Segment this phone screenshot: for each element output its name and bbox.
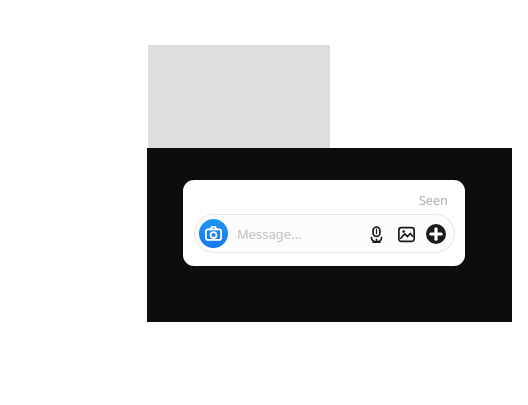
button[interactable]: More actions [423, 221, 449, 247]
staticText: Seen [419, 192, 448, 209]
button[interactable]: Send a photo [393, 221, 419, 247]
button[interactable]: Open camera [199, 219, 228, 248]
staticText: Message... [237, 225, 302, 243]
button[interactable]: Record voice message [363, 221, 389, 247]
button[interactable]: Open camera [194, 214, 455, 253]
